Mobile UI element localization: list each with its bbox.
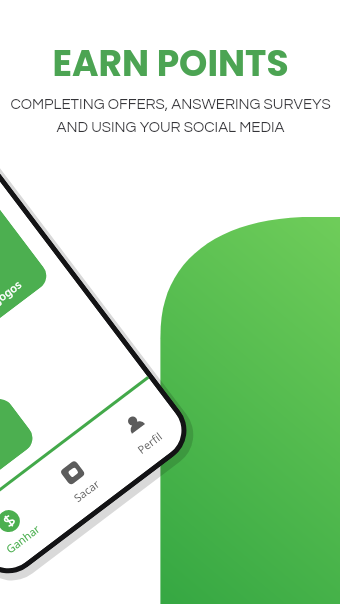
staticText: Mais Jogos xyxy=(0,276,25,323)
other: Perfil xyxy=(120,410,151,440)
button[interactable]: Sacar xyxy=(34,440,123,521)
other: Sacar xyxy=(57,457,88,488)
button[interactable]: Mais Jogos xyxy=(0,171,52,336)
other: Ganhar xyxy=(0,506,24,536)
staticText: Sacar xyxy=(70,476,103,505)
staticText: EARN POINTS xyxy=(52,38,289,88)
staticText: Ganhar xyxy=(3,521,43,556)
button[interactable]: Perfil xyxy=(98,393,185,472)
button[interactable]: Ganhar xyxy=(0,488,59,569)
staticText: Perfil xyxy=(134,429,165,457)
staticText: COMPLETING OFFERS, ANSWERING SURVEYS AND… xyxy=(10,97,331,135)
button[interactable]: Amigos xyxy=(0,393,38,498)
